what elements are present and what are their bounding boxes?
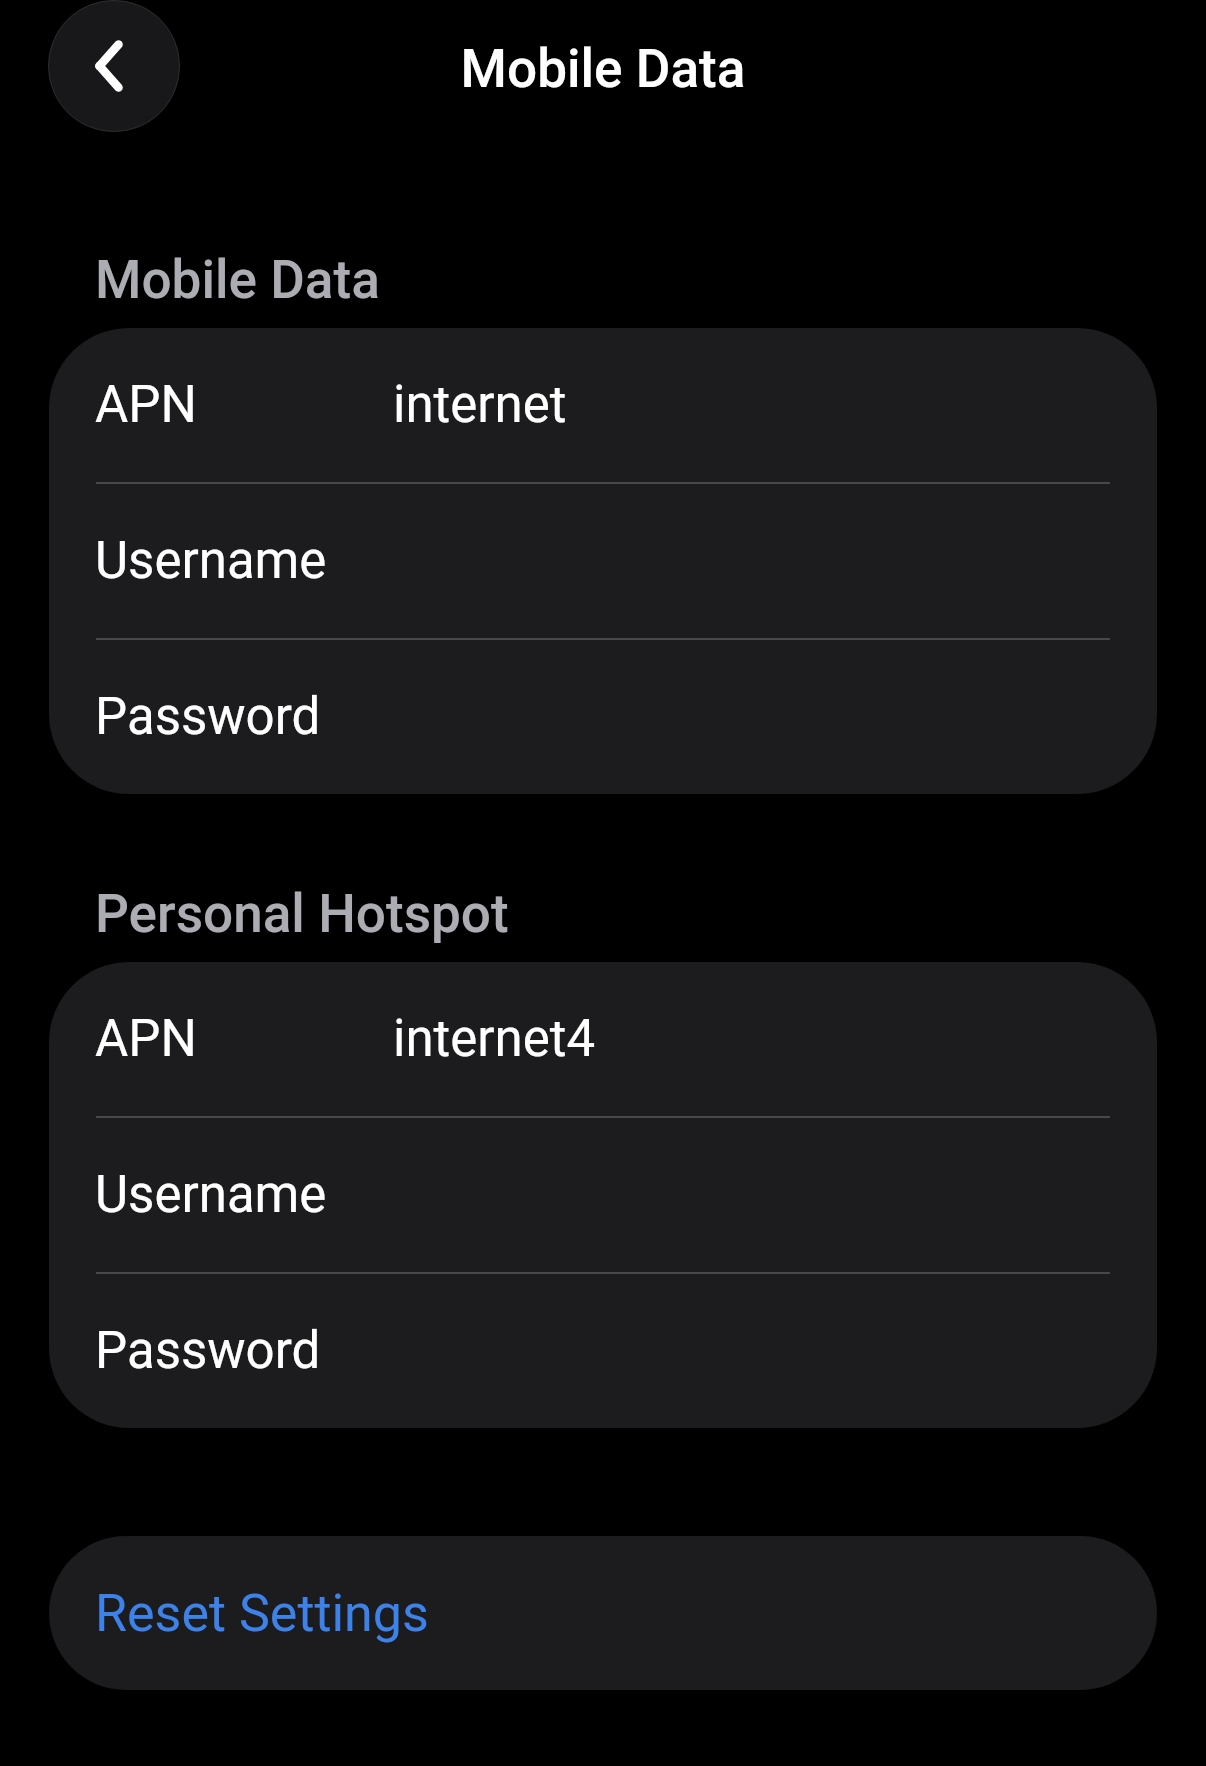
button[interactable]: Password: [49, 640, 1157, 794]
staticText: APN: [95, 375, 197, 435]
button[interactable]: Password: [49, 1274, 1157, 1428]
staticText: Username: [95, 1165, 327, 1225]
button[interactable]: APN: [49, 328, 1157, 482]
staticText: Personal Hotspot: [95, 883, 509, 945]
staticText: Password: [95, 687, 321, 747]
button[interactable]: Reset Settings: [49, 1536, 1157, 1690]
button[interactable]: Back: [48, 0, 180, 132]
staticText: internet4: [393, 1009, 596, 1069]
staticText: Reset Settings: [95, 1583, 429, 1644]
staticText: internet: [393, 375, 567, 435]
button[interactable]: Username: [49, 484, 1157, 638]
button[interactable]: Username: [49, 1118, 1157, 1272]
staticText: Mobile Data: [0, 38, 1206, 100]
staticText: Password: [95, 1321, 321, 1381]
staticText: Username: [95, 531, 327, 591]
button[interactable]: APN: [49, 962, 1157, 1116]
staticText: APN: [95, 1009, 197, 1069]
staticText: Mobile Data: [95, 249, 380, 311]
